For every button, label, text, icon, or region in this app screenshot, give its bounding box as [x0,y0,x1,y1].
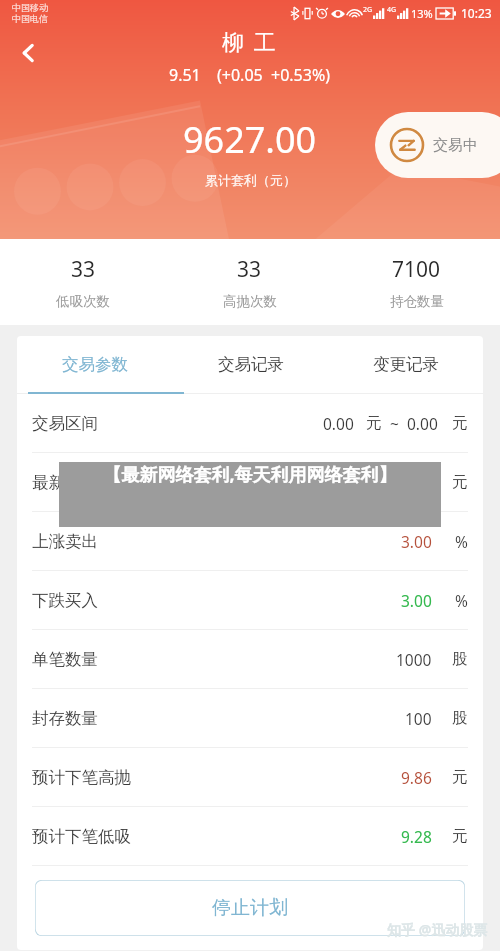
staticText: 高抛次数 [223,293,277,310]
button[interactable]: Back [10,34,48,72]
button[interactable]: 7100 [333,239,500,325]
staticText: 预计下笔高抛 [32,767,131,788]
staticText: 预计下笔低吸 [32,826,131,847]
staticText: 7100 [392,255,441,284]
button[interactable]: 33 [0,239,166,325]
staticText: 元 [452,413,468,433]
staticText: 交易区间 [32,413,98,434]
staticText: 停止计划 [212,896,288,920]
staticText: 累计套利（元） [205,172,296,188]
button[interactable]: 交易参数 [17,336,173,392]
staticText: 单笔数量 [32,649,98,670]
staticText: 1000 [396,649,432,670]
staticText: % [455,590,468,611]
staticText: 交易参数 [62,354,128,375]
staticText: 2G [363,5,373,15]
staticText: 4G [387,5,397,15]
staticText: 元 [452,767,468,787]
staticText: 100 [405,708,432,729]
staticText: 股 [452,649,468,669]
button[interactable]: 交易区间 [32,394,468,452]
staticText: ~ [390,413,399,434]
button[interactable]: 33 [166,239,333,325]
staticText: 元 [366,413,382,433]
staticText: 变更记录 [373,354,439,375]
button[interactable]: 封存数量 [32,689,468,747]
staticText: 0.00 [323,413,354,434]
staticText: 10:23 [461,5,492,21]
staticText: 0.00 [407,413,438,434]
staticText: 封存数量 [32,708,98,729]
staticText: 交易记录 [218,354,284,375]
staticText: 低吸次数 [56,293,110,310]
staticText: 下跌买入 [32,590,98,611]
button[interactable]: 交易记录 [173,336,328,392]
staticText: 13% [411,6,433,21]
button[interactable]: 单笔数量 [32,630,468,688]
staticText: 元 [452,826,468,846]
staticText: 33 [237,255,262,284]
button[interactable]: 上涨卖出 [32,512,468,570]
staticText: 33 [71,255,96,284]
staticText: 3.00 [401,590,432,611]
staticText: 股 [452,708,468,728]
button[interactable]: 预计下笔高抛 [32,748,468,806]
staticText: 持仓数量 [390,293,444,310]
staticText: 元 [452,472,468,492]
button[interactable]: 变更记录 [328,336,483,392]
staticText: 9.51 [169,64,201,86]
staticText: 中国移动 [12,2,48,13]
button[interactable]: 预计下笔低吸 [32,807,468,865]
button[interactable]: 停止计划 [35,880,465,936]
button[interactable]: 最新基准价 [32,453,468,511]
staticText: 【最新网络套利,每天利用网络套利】 [65,462,435,487]
button[interactable]: 交易中 [375,112,500,178]
staticText: 9.86 [401,767,432,788]
staticText: 柳 工 [222,26,278,56]
staticText: % [455,531,468,552]
staticText: 3.00 [401,531,432,552]
staticText: 知乎 @迅动股票 [387,920,488,939]
staticText: 最新基准价 [32,472,115,493]
staticText: 中国电信 [12,13,48,24]
staticText: 交易中 [433,136,478,155]
staticText: (+0.05 +0.53%) [217,64,331,86]
staticText: 9.28 [401,826,432,847]
staticText: 上涨卖出 [32,531,98,552]
button[interactable]: 下跌买入 [32,571,468,629]
staticText: 9627.00 [183,115,317,164]
